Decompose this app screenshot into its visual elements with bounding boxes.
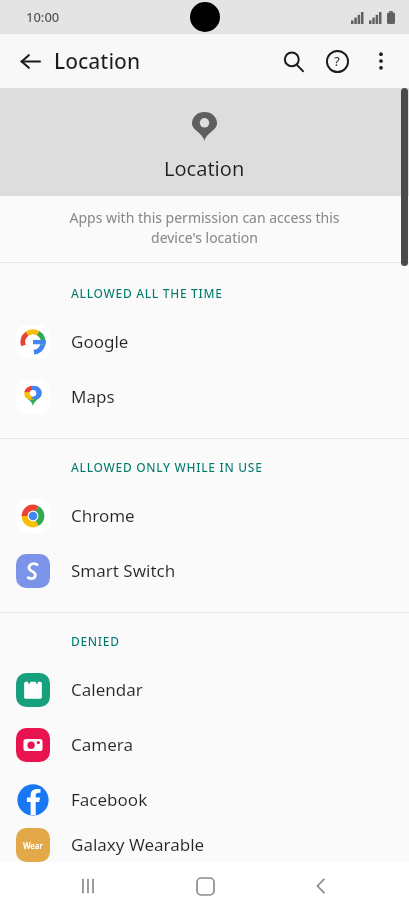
button[interactable]: Chrome	[0, 488, 409, 543]
staticText: Location	[54, 47, 141, 76]
staticText: Google	[71, 330, 129, 353]
button[interactable]: Home	[176, 862, 234, 910]
button[interactable]: Facebook	[0, 772, 409, 827]
staticText: Smart Switch	[71, 559, 176, 582]
button[interactable]: Maps	[0, 369, 409, 424]
staticText: ALLOWED ALL THE TIME	[71, 285, 223, 301]
staticText: Calendar	[71, 678, 143, 701]
button[interactable]: Google	[0, 314, 409, 369]
button[interactable]: Calendar	[0, 662, 409, 717]
staticText: Galaxy Wearable	[71, 833, 205, 856]
staticText: Maps	[71, 385, 115, 408]
staticText: ALLOWED ONLY WHILE IN USE	[71, 459, 263, 475]
button[interactable]: Recents	[59, 862, 117, 910]
button[interactable]: Search	[271, 39, 315, 83]
staticText: Camera	[71, 733, 133, 756]
staticText: ?	[334, 52, 340, 70]
button[interactable]: Smart Switch	[0, 543, 409, 598]
staticText: Location	[164, 155, 245, 182]
button[interactable]: Help	[315, 39, 359, 83]
button[interactable]: Wear	[0, 827, 409, 862]
button[interactable]: Back	[292, 862, 350, 910]
button[interactable]: Back	[10, 41, 50, 81]
staticText: Facebook	[71, 788, 148, 811]
staticText: Chrome	[71, 504, 135, 527]
staticText: 10:00	[26, 8, 60, 26]
button[interactable]: More options	[359, 39, 403, 83]
staticText: Wear	[23, 840, 43, 851]
staticText: Apps with this permission can access thi…	[28, 208, 381, 247]
staticText: DENIED	[71, 633, 120, 649]
button[interactable]: Camera	[0, 717, 409, 772]
